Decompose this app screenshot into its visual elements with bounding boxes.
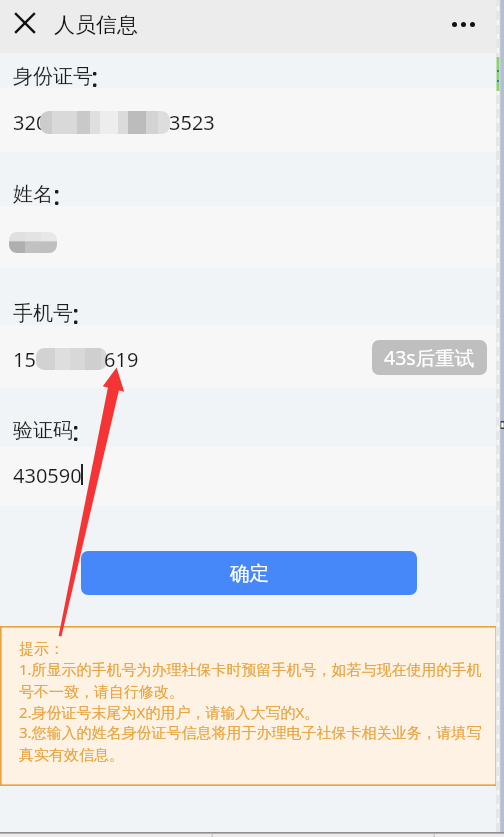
staticText: 人员信息 — [54, 12, 138, 38]
button[interactable]: Close — [7, 5, 43, 41]
staticText: 2.身份证号末尾为X的用户，请输入大写的X。 — [19, 702, 320, 722]
button[interactable]: 43s后重试 — [372, 340, 487, 375]
staticText: 手机号 — [13, 301, 73, 326]
staticText: 3523 — [169, 109, 215, 136]
staticText: 619 — [104, 346, 139, 373]
staticText: 3.您输入的姓名身份证号信息将用于办理电子社保卡相关业务，请填写真实有效信息。 — [19, 722, 492, 765]
staticText: 姓名 — [13, 182, 53, 207]
staticText: 确定 — [230, 561, 269, 586]
button[interactable]: More options — [440, 1, 486, 47]
staticText: 提示： — [19, 640, 64, 659]
button[interactable]: 确定 — [81, 551, 417, 595]
staticText: 身份证号 — [13, 64, 93, 89]
staticText: 430590 — [13, 462, 82, 489]
staticText: 验证码 — [13, 418, 73, 443]
staticText: 15 — [13, 346, 36, 373]
staticText: 43s后重试 — [384, 344, 475, 371]
staticText: 1.所显示的手机号为办理社保卡时预留手机号，如若与现在使用的手机号不一致，请自行… — [19, 659, 492, 702]
staticText: 320 — [13, 109, 48, 136]
